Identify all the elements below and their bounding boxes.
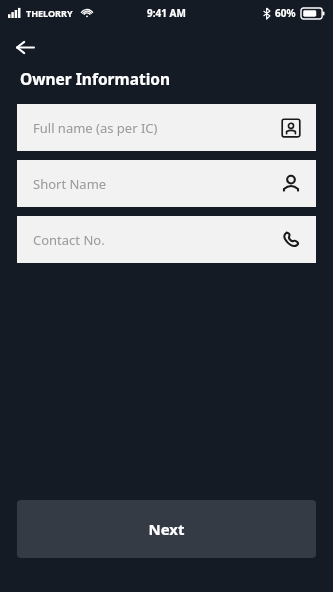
staticText: THELORRY — [26, 7, 73, 19]
staticText: Full name (as per IC) — [33, 119, 280, 137]
button[interactable]: Contact No. — [17, 216, 316, 263]
staticText: Owner Information — [20, 68, 171, 89]
button[interactable]: Next — [17, 500, 316, 558]
staticText: Short Name — [33, 175, 280, 193]
staticText: Contact No. — [33, 231, 280, 249]
staticText: Next — [148, 519, 185, 539]
staticText: 9:41 AM — [147, 6, 186, 20]
button[interactable]: Back — [10, 32, 40, 62]
staticText: 60% — [275, 6, 296, 20]
button[interactable]: Short Name — [17, 160, 316, 207]
button[interactable]: Full name (as per IC) — [17, 104, 316, 151]
